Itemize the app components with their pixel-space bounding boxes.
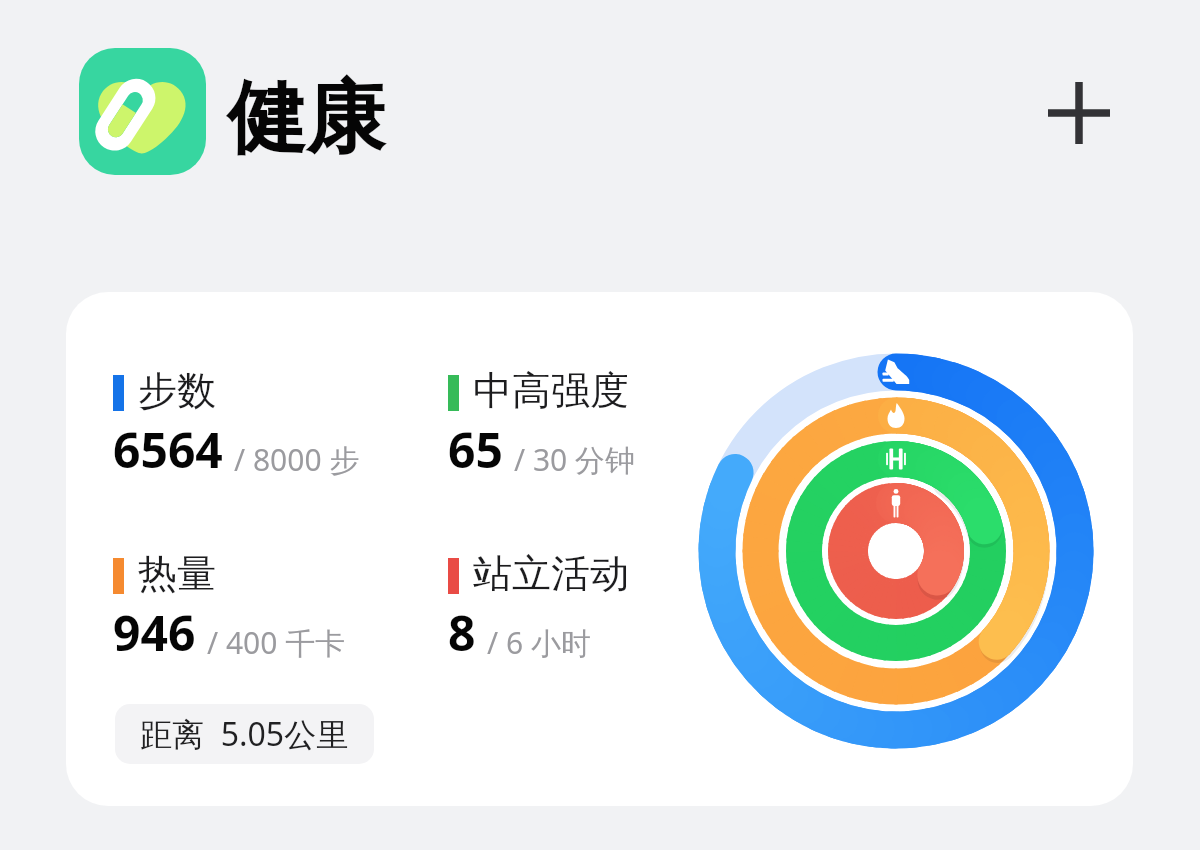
staticText: 热量 [138,549,216,598]
staticText: 步数 [138,366,216,415]
staticText: / 6 小时 [487,622,591,663]
staticText: 8 [448,600,476,665]
button[interactable]: 步数 [66,292,1133,806]
button[interactable]: 距离 5.05公里 [115,704,374,764]
staticText: 6564 [113,417,223,482]
staticText: 946 [113,600,196,665]
staticText: 65 [448,417,503,482]
button[interactable]: Health [79,48,206,175]
staticText: / 30 分钟 [514,439,636,480]
staticText: 站立活动 [473,549,629,598]
button[interactable]: 步数 [113,368,433,493]
button[interactable]: 热量 [113,551,433,676]
button[interactable]: Add record [1029,63,1129,163]
button[interactable]: 站立活动 [448,551,768,676]
staticText: 健康 [227,69,385,169]
staticText: / 8000 步 [234,439,360,480]
staticText: 距离 5.05公里 [140,712,349,756]
staticText: / 400 千卡 [207,622,346,663]
button[interactable]: 中高强度 [448,368,768,493]
staticText: 中高强度 [473,366,629,415]
